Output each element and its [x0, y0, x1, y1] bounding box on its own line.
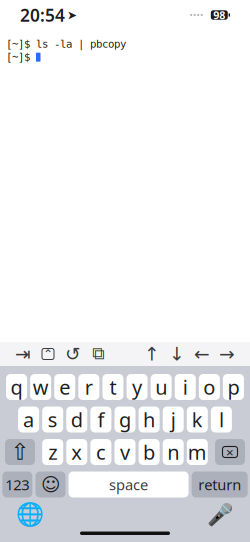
staticText: 🎤 — [206, 502, 233, 527]
staticText: s — [48, 406, 58, 433]
button[interactable]: Control — [37, 343, 59, 365]
staticText: q — [10, 374, 22, 400]
button[interactable]: g — [114, 406, 135, 432]
button[interactable]: Left — [191, 343, 213, 365]
staticText: ↓ — [169, 343, 185, 365]
button[interactable]: d — [66, 406, 87, 432]
button[interactable]: v — [114, 439, 135, 465]
button[interactable]: Right — [216, 343, 238, 365]
staticText: ⇧ — [10, 439, 29, 465]
button[interactable]: e — [54, 374, 75, 400]
staticText: g — [119, 406, 131, 433]
button[interactable]: j — [163, 406, 184, 432]
staticText: ↺ — [65, 343, 81, 365]
staticText: space — [109, 475, 148, 494]
staticText: m — [188, 439, 207, 465]
staticText: → — [219, 343, 235, 365]
button[interactable]: k — [187, 406, 208, 432]
staticText: i — [183, 374, 188, 400]
staticText: e — [59, 374, 70, 400]
staticText: ← — [194, 343, 210, 365]
button[interactable]: w — [30, 374, 51, 400]
button[interactable]: t — [102, 374, 123, 400]
staticText: ⌃ — [43, 347, 53, 361]
staticText: ↑ — [144, 343, 160, 365]
button[interactable]: i — [175, 374, 196, 400]
button[interactable]: y — [126, 374, 147, 400]
staticText: k — [192, 406, 203, 433]
button[interactable]: History — [62, 343, 84, 365]
staticText: ➤ — [67, 8, 77, 22]
button[interactable]: Return — [192, 471, 248, 497]
staticText: [~]$ ls -la | pbcopy — [6, 38, 126, 50]
button[interactable]: Delete — [215, 439, 245, 465]
button[interactable]: Up — [141, 343, 163, 365]
staticText: ☺ — [41, 474, 60, 495]
staticText: h — [143, 406, 155, 433]
staticText: c — [96, 439, 106, 465]
staticText: ⧉ — [92, 345, 104, 362]
button[interactable]: b — [139, 439, 160, 465]
button[interactable]: z — [42, 439, 63, 465]
staticText: 20:54 — [20, 3, 65, 26]
staticText: return — [198, 475, 241, 494]
staticText: 123 — [5, 475, 29, 494]
staticText: z — [48, 439, 57, 465]
button[interactable]: Numbers — [2, 471, 32, 497]
button[interactable]: s — [42, 406, 63, 432]
button[interactable]: x — [66, 439, 87, 465]
staticText: t — [109, 374, 116, 400]
staticText: × — [226, 443, 234, 461]
staticText: d — [71, 406, 83, 433]
button[interactable]: space — [68, 471, 188, 497]
button[interactable]: Tab — [12, 343, 34, 365]
staticText: p — [227, 374, 239, 400]
button[interactable]: m — [187, 439, 208, 465]
staticText: a — [23, 406, 34, 433]
button[interactable]: Switch keyboard — [16, 500, 44, 528]
staticText: r — [85, 374, 93, 400]
button[interactable]: c — [90, 439, 111, 465]
button[interactable]: p — [223, 374, 244, 400]
staticText: v — [120, 439, 130, 465]
staticText: 🌐 — [16, 502, 44, 527]
staticText: 98 — [213, 8, 225, 22]
staticText: o — [203, 374, 215, 400]
staticText: b — [143, 439, 155, 465]
staticText: w — [33, 374, 49, 400]
button[interactable]: n — [163, 439, 184, 465]
button[interactable]: q — [6, 374, 27, 400]
button[interactable]: h — [139, 406, 160, 432]
staticText: f — [97, 406, 104, 433]
button[interactable]: u — [151, 374, 172, 400]
button[interactable]: Shift — [5, 439, 35, 465]
button[interactable]: a — [18, 406, 39, 432]
staticText: j — [171, 406, 176, 433]
button[interactable]: l — [211, 406, 232, 432]
staticText: ⇥ — [15, 343, 31, 365]
staticText: x — [71, 439, 82, 465]
button[interactable]: Dictate — [206, 500, 234, 528]
staticText: y — [132, 374, 142, 400]
staticText: l — [219, 406, 224, 433]
staticText: [~]$ — [6, 51, 36, 63]
staticText: n — [167, 439, 179, 465]
button[interactable]: Paste — [87, 343, 109, 365]
button[interactable]: r — [78, 374, 99, 400]
button[interactable]: Emoji — [35, 471, 65, 497]
button[interactable]: f — [90, 406, 111, 432]
button[interactable]: o — [199, 374, 220, 400]
button[interactable]: Down — [166, 343, 188, 365]
staticText: u — [155, 374, 167, 400]
